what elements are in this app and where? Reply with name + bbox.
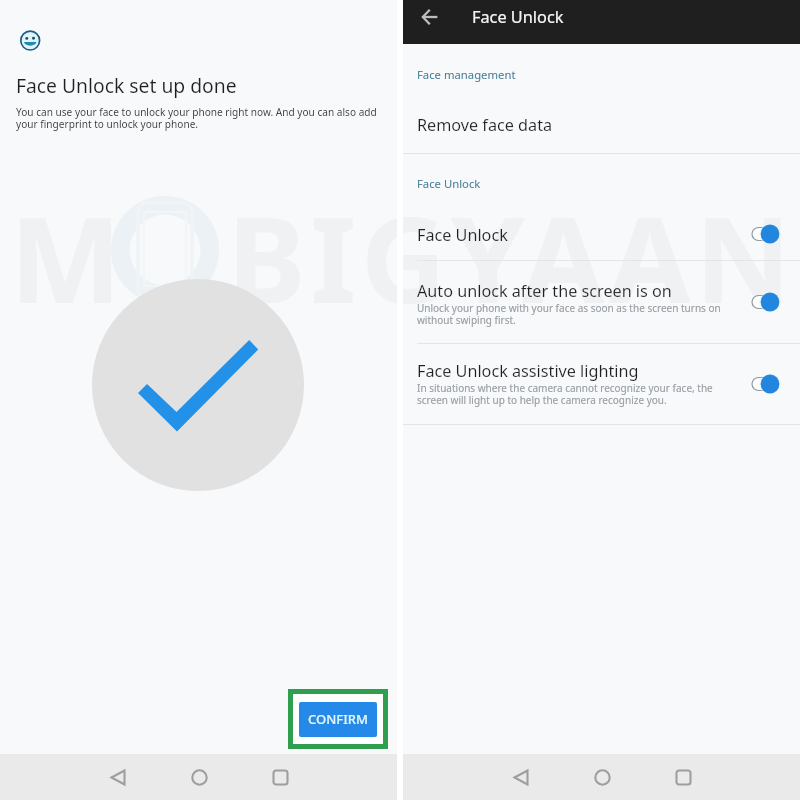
staticText: BIGYAAN: [403, 177, 796, 338]
staticText: BIGYAAN: [227, 177, 397, 338]
button[interactable]: Back: [502, 755, 540, 799]
button[interactable]: Auto unlock after the screen is on: [403, 260, 800, 343]
button[interactable]: Navigate up: [408, 0, 452, 34]
staticText: Face management: [417, 67, 516, 82]
staticText: Face Unlock: [417, 224, 508, 246]
button[interactable]: Toggle, on: [749, 290, 783, 314]
staticText: Auto unlock after the screen is on: [417, 280, 672, 302]
button[interactable]: Back: [99, 755, 137, 799]
button[interactable]: Home: [180, 755, 218, 799]
button[interactable]: Recent apps: [664, 755, 702, 799]
staticText: Unlock your phone with your face as soon…: [417, 301, 721, 327]
staticText: You can use your face to unlock your pho…: [16, 105, 377, 131]
staticText: Face Unlock assistive lighting: [417, 360, 639, 382]
button[interactable]: Toggle, on: [749, 222, 783, 246]
button[interactable]: Remove face data: [403, 104, 800, 160]
button[interactable]: Recent apps: [261, 755, 299, 799]
button[interactable]: Home: [583, 755, 621, 799]
button[interactable]: CONFIRM: [299, 702, 377, 737]
button[interactable]: Toggle, on: [749, 372, 783, 396]
staticText: Face Unlock: [417, 176, 481, 191]
staticText: CONFIRM: [308, 710, 368, 728]
staticText: In situations where the camera cannot re…: [417, 381, 713, 407]
staticText: Face Unlock: [472, 6, 564, 28]
staticText: Face Unlock set up done: [16, 72, 237, 98]
staticText: Remove face data: [417, 114, 553, 136]
button[interactable]: Face Unlock: [403, 210, 800, 260]
staticText: M: [10, 177, 126, 338]
button[interactable]: Face Unlock assistive lighting: [403, 343, 800, 424]
